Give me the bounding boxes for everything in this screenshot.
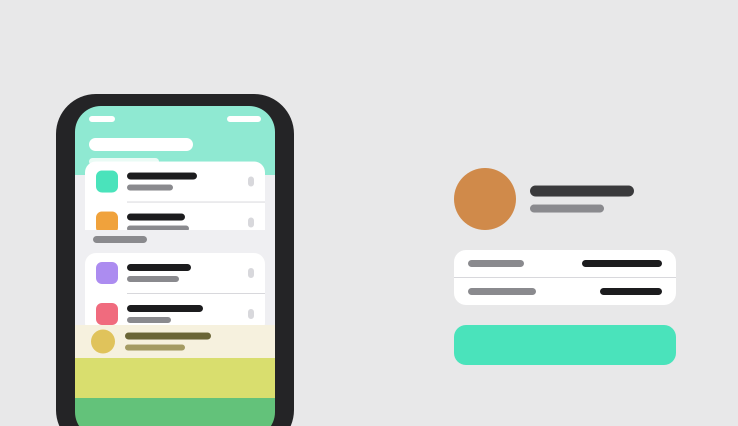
- button[interactable]: Profile photo: [454, 168, 516, 230]
- button[interactable]: [454, 325, 676, 365]
